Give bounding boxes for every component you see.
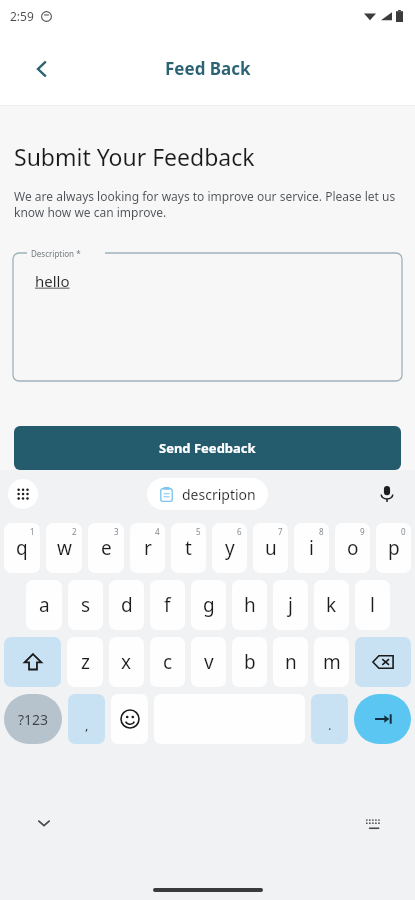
staticText: e: [101, 535, 112, 561]
staticText: s: [81, 592, 91, 618]
button[interactable]: c: [150, 637, 185, 687]
button[interactable]: p: [376, 523, 411, 573]
staticText: l: [370, 592, 375, 618]
button[interactable]: ?123: [4, 694, 62, 744]
staticText: r: [144, 535, 152, 561]
staticText: description: [182, 485, 256, 504]
staticText: y: [225, 535, 235, 561]
staticText: Send Feedback: [159, 439, 256, 457]
button[interactable]: z: [67, 637, 103, 687]
button[interactable]: r: [130, 523, 165, 573]
staticText: m: [323, 649, 341, 675]
staticText: u: [265, 535, 277, 561]
button[interactable]: f: [150, 580, 185, 630]
staticText: Submit Your Feedback: [14, 141, 255, 172]
staticText: h: [244, 592, 256, 618]
staticText: 5: [196, 526, 201, 537]
button[interactable]: Keyboard switch: [8, 479, 38, 509]
button[interactable]: v: [191, 637, 226, 687]
staticText: p: [388, 535, 400, 561]
staticText: q: [16, 535, 28, 561]
button[interactable]: h: [232, 580, 267, 630]
staticText: We are always looking for ways to improv…: [14, 188, 396, 221]
button[interactable]: Send Feedback: [14, 426, 401, 470]
button[interactable]: u: [253, 523, 288, 573]
staticText: v: [204, 649, 214, 675]
staticText: 2: [72, 526, 77, 537]
staticText: .: [328, 716, 332, 734]
staticText: ,: [85, 716, 89, 734]
staticText: 4: [155, 526, 160, 537]
button[interactable]: x: [109, 637, 144, 687]
staticText: ?123: [18, 710, 49, 729]
staticText: hello: [35, 271, 70, 291]
staticText: a: [39, 592, 50, 618]
button[interactable]: ,: [68, 694, 105, 744]
staticText: 9: [360, 526, 365, 537]
button[interactable]: g: [191, 580, 226, 630]
staticText: k: [326, 592, 337, 618]
staticText: t: [185, 535, 192, 561]
button[interactable]: .: [311, 694, 348, 744]
staticText: j: [288, 592, 293, 618]
button[interactable]: Back: [24, 51, 60, 87]
staticText: 1: [30, 526, 35, 537]
button[interactable]: n: [273, 637, 308, 687]
button[interactable]: b: [232, 637, 267, 687]
staticText: c: [163, 649, 173, 675]
button[interactable]: l: [355, 580, 390, 630]
button[interactable]: s: [68, 580, 103, 630]
staticText: 2:59: [10, 8, 34, 24]
button[interactable]: o: [335, 523, 370, 573]
button[interactable]: Shift: [4, 637, 61, 687]
staticText: o: [347, 535, 359, 561]
staticText: 8: [319, 526, 324, 537]
button[interactable]: description: [147, 478, 268, 510]
button[interactable]: k: [314, 580, 349, 630]
button[interactable]: w: [46, 523, 82, 573]
staticText: w: [57, 535, 72, 561]
button[interactable]: q: [4, 523, 40, 573]
button[interactable]: d: [109, 580, 144, 630]
button[interactable]: t: [171, 523, 206, 573]
staticText: 3: [114, 526, 119, 537]
button[interactable]: Hide keyboard: [30, 809, 58, 837]
staticText: 7: [278, 526, 283, 537]
staticText: d: [121, 592, 133, 618]
staticText: Description *: [31, 248, 81, 259]
button[interactable]: Voice input: [373, 480, 401, 508]
button[interactable]: a: [26, 580, 62, 630]
staticText: x: [121, 649, 132, 675]
button[interactable]: j: [273, 580, 308, 630]
button[interactable]: m: [314, 637, 349, 687]
button[interactable]: Backspace: [355, 637, 411, 687]
staticText: i: [309, 535, 314, 561]
staticText: b: [244, 649, 256, 675]
staticText: n: [285, 649, 297, 675]
button[interactable]: Enter: [354, 694, 411, 744]
button[interactable]: Emoji: [111, 694, 148, 744]
staticText: f: [164, 592, 171, 618]
staticText: 6: [237, 526, 242, 537]
button[interactable]: y: [212, 523, 247, 573]
button[interactable]: i: [294, 523, 329, 573]
button[interactable]: Change keyboard: [359, 809, 387, 837]
staticText: g: [203, 592, 215, 618]
staticText: 0: [401, 526, 406, 537]
staticText: Feed Back: [165, 57, 251, 80]
staticText: z: [81, 649, 90, 675]
button[interactable]: e: [88, 523, 124, 573]
